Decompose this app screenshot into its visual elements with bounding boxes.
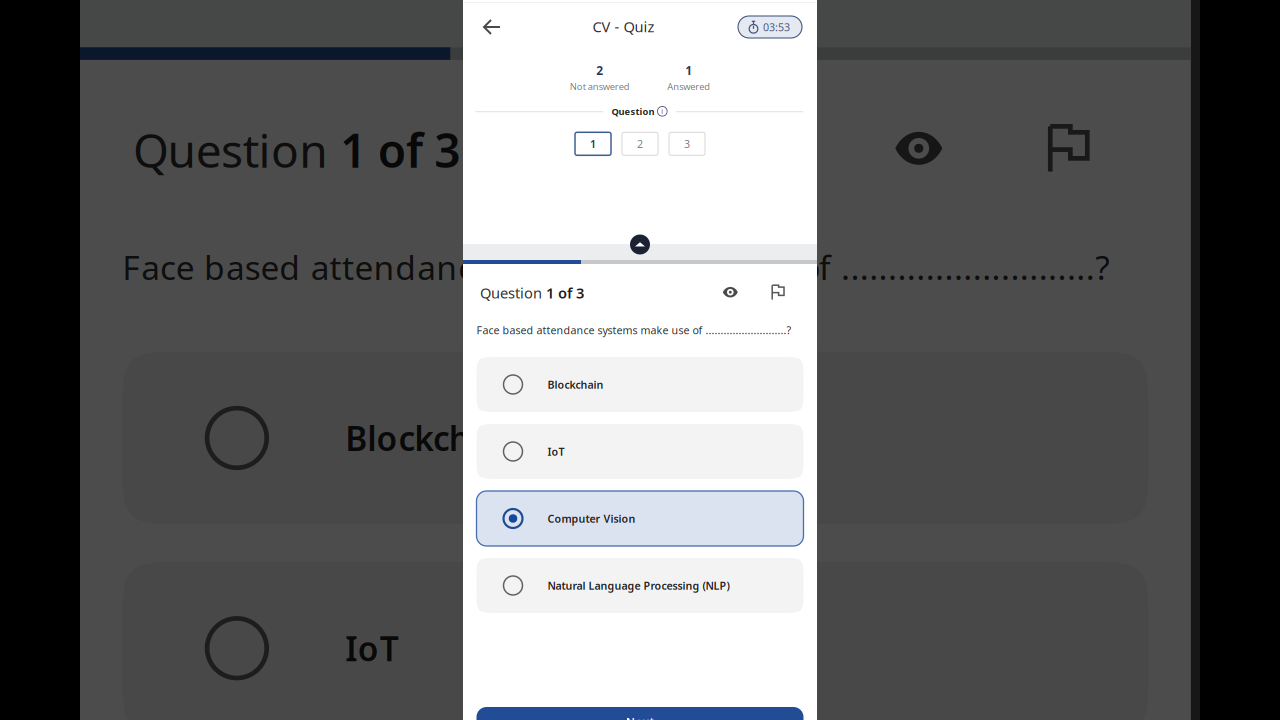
button[interactable]: 1 bbox=[575, 132, 611, 155]
staticText: 03:53 bbox=[763, 20, 790, 34]
staticText: Answered bbox=[667, 80, 710, 93]
staticText: 2 bbox=[637, 137, 643, 151]
staticText: Blockchain bbox=[547, 377, 603, 392]
button[interactable]: IoT bbox=[476, 424, 803, 479]
staticText: i bbox=[661, 107, 663, 116]
button[interactable]: Computer Vision bbox=[476, 491, 803, 546]
button[interactable]: Expand question list bbox=[630, 234, 650, 254]
staticText: 2 bbox=[596, 62, 603, 78]
staticText: Next bbox=[625, 714, 654, 720]
staticText: Computer Vision bbox=[547, 511, 635, 526]
staticText: Question bbox=[611, 105, 654, 117]
staticText: Face based attendance systems make use o… bbox=[476, 323, 791, 337]
staticText: CV - Quiz bbox=[592, 17, 654, 36]
staticText: IoT bbox=[547, 444, 564, 459]
staticText: 1 of 3 bbox=[546, 283, 584, 302]
staticText: 1 bbox=[590, 137, 596, 151]
button[interactable]: Next bbox=[476, 707, 803, 720]
staticText: Question bbox=[480, 283, 546, 302]
button[interactable]: 03:53 bbox=[738, 16, 802, 38]
staticText: 1 bbox=[685, 62, 692, 78]
button[interactable]: 3 bbox=[669, 132, 705, 155]
button[interactable]: Flag question bbox=[764, 278, 792, 306]
staticText: Not answered bbox=[570, 80, 630, 93]
button[interactable]: Show answer bbox=[716, 278, 744, 306]
button[interactable]: Back bbox=[466, 8, 504, 46]
staticText: 3 bbox=[684, 137, 690, 151]
staticText: Natural Language Processing (NLP) bbox=[547, 578, 729, 593]
button[interactable]: 2 bbox=[622, 132, 658, 155]
button[interactable]: Blockchain bbox=[476, 357, 803, 412]
button[interactable]: Natural Language Processing (NLP) bbox=[476, 558, 803, 613]
